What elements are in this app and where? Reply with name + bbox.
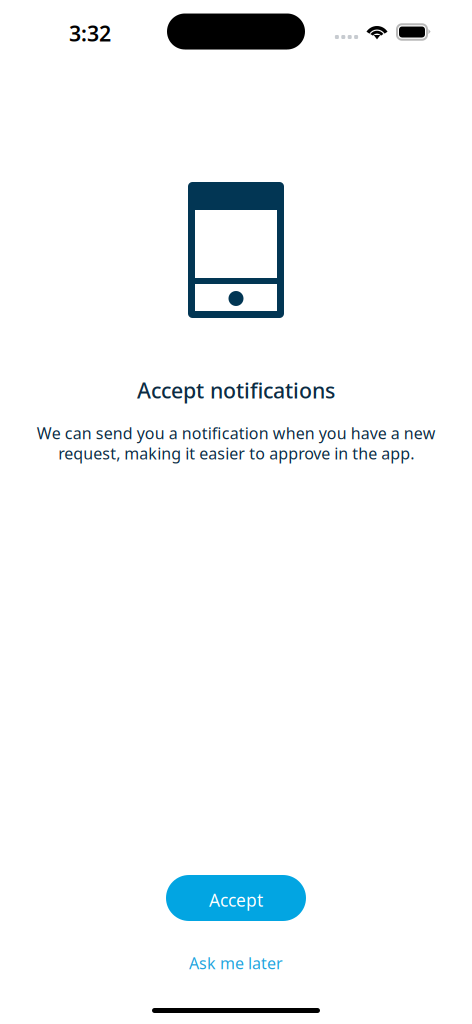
- staticText: We can send you a notification when you …: [36, 422, 435, 443]
- button[interactable]: Ask me later: [156, 944, 316, 982]
- staticText: 3:32: [69, 19, 111, 47]
- staticText: Accept notifications: [137, 376, 335, 404]
- staticText: request, making it easier to approve in …: [58, 443, 414, 464]
- staticText: Accept: [209, 888, 263, 911]
- staticText: Ask me later: [189, 952, 283, 974]
- button[interactable]: Accept: [166, 875, 306, 921]
